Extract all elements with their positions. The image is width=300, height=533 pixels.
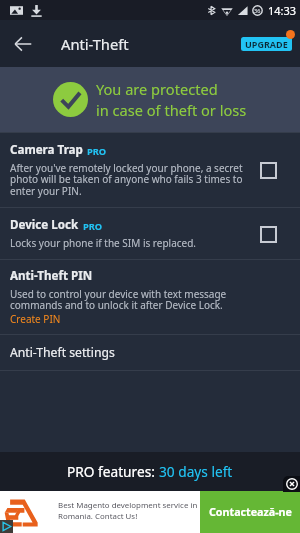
staticText: 30 days left bbox=[159, 462, 233, 481]
staticText: Best Magento development service in bbox=[58, 500, 198, 511]
button[interactable]: Anti-Theft PIN bbox=[0, 260, 300, 334]
staticText: Camera Trap bbox=[10, 142, 83, 158]
button[interactable]: UPGRADE bbox=[241, 37, 292, 51]
button[interactable]: Close ad bbox=[283, 476, 300, 492]
button[interactable]: Contactează-ne bbox=[200, 491, 300, 533]
staticText: Create PIN bbox=[10, 312, 61, 326]
button[interactable]: PRO features: bbox=[0, 452, 300, 491]
staticText: PRO bbox=[83, 220, 103, 233]
button[interactable]: Camera Trap bbox=[255, 157, 281, 183]
staticText: You are protected bbox=[96, 79, 218, 99]
staticText: PRO bbox=[87, 145, 107, 158]
staticText: After you've remotely locked your phone,… bbox=[10, 161, 243, 198]
staticText: Contactează-ne bbox=[209, 505, 292, 520]
button[interactable]: You are protected bbox=[0, 67, 300, 132]
button[interactable]: Anti-Theft settings bbox=[0, 335, 300, 370]
staticText: in case of theft or loss bbox=[96, 100, 247, 120]
staticText: Used to control your device with text me… bbox=[10, 287, 227, 312]
staticText: 36 bbox=[254, 7, 261, 14]
staticText: Anti-Theft bbox=[61, 34, 129, 54]
staticText: Romania. Contact Us! bbox=[58, 511, 138, 522]
staticText: Locks your phone if the SIM is replaced. bbox=[10, 236, 197, 250]
button[interactable]: Device Lock bbox=[255, 221, 281, 247]
button[interactable]: Back bbox=[7, 28, 39, 60]
staticText: 14:33 bbox=[268, 3, 297, 18]
button[interactable]: AdChoices bbox=[0, 520, 13, 533]
button[interactable]: Device Lock bbox=[0, 208, 300, 259]
staticText: UPGRADE bbox=[245, 38, 288, 50]
staticText: Anti-Theft settings bbox=[10, 344, 115, 361]
staticText: Anti-Theft PIN bbox=[10, 268, 93, 284]
staticText: Device Lock bbox=[10, 217, 79, 233]
staticText: PRO features: bbox=[67, 462, 159, 481]
button[interactable]: Camera Trap bbox=[0, 133, 300, 207]
